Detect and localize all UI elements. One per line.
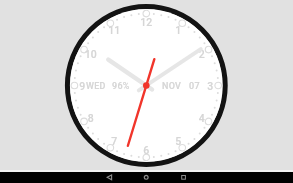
button[interactable]: Recents: [171, 172, 196, 183]
button[interactable]: Back: [98, 172, 123, 183]
button[interactable]: Home: [134, 172, 159, 183]
